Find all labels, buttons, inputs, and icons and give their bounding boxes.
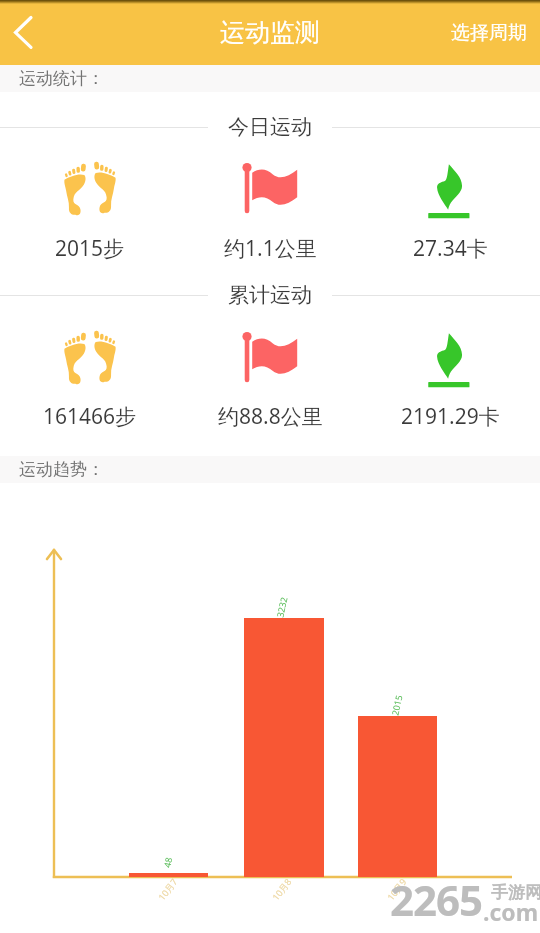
- staticText: 运动统计：: [19, 68, 104, 89]
- staticText: 27.34卡: [413, 234, 488, 260]
- button[interactable]: [180, 324, 360, 392]
- staticText: 约1.1公里: [224, 234, 317, 260]
- staticText: 今日运动: [228, 114, 312, 140]
- staticText: .com: [483, 896, 539, 927]
- button[interactable]: 选择周期: [439, 0, 540, 65]
- staticText: 2265: [390, 871, 483, 928]
- staticText: 10月9: [384, 875, 409, 903]
- button[interactable]: [0, 155, 180, 223]
- staticText: 手游网: [491, 882, 540, 903]
- button[interactable]: Back: [0, 0, 52, 65]
- staticText: 累计运动: [228, 282, 312, 308]
- staticText: 2191.29卡: [401, 402, 500, 428]
- staticText: 161466步: [43, 402, 137, 428]
- staticText: 10月7: [155, 875, 180, 903]
- staticText: 3232: [273, 595, 289, 618]
- button[interactable]: [0, 324, 180, 392]
- staticText: 选择周期: [451, 21, 527, 45]
- button[interactable]: [360, 324, 540, 392]
- button[interactable]: [360, 155, 540, 223]
- staticText: 运动趋势：: [19, 459, 104, 480]
- staticText: 2015步: [55, 234, 125, 260]
- staticText: 约88.8公里: [218, 402, 323, 428]
- staticText: 48: [160, 855, 174, 869]
- staticText: 10月8: [269, 875, 294, 903]
- button[interactable]: [180, 155, 360, 223]
- staticText: 运动监测: [220, 17, 320, 48]
- staticText: 2015: [388, 693, 404, 716]
